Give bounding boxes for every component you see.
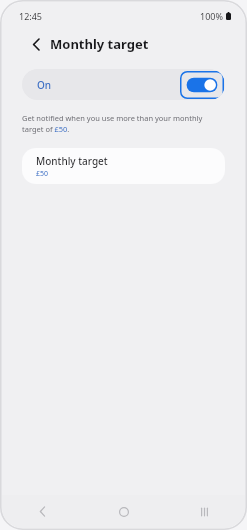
button[interactable]: Toggle monthly target [180,71,224,99]
button[interactable]: Back [27,35,45,53]
button[interactable]: Back [2,495,83,528]
button[interactable]: Home [83,495,164,528]
staticText: £50 [36,169,49,179]
button[interactable]: Recents [164,495,245,528]
staticText: Monthly target [50,35,149,53]
staticText: 100% [200,10,223,22]
button[interactable]: Monthly target [22,148,225,184]
staticText: Get notified when you use more than your… [22,113,203,134]
staticText: 12:45 [19,10,43,22]
staticText: On [37,78,52,92]
button[interactable]: On [22,69,225,100]
staticText: Monthly target [36,154,108,168]
